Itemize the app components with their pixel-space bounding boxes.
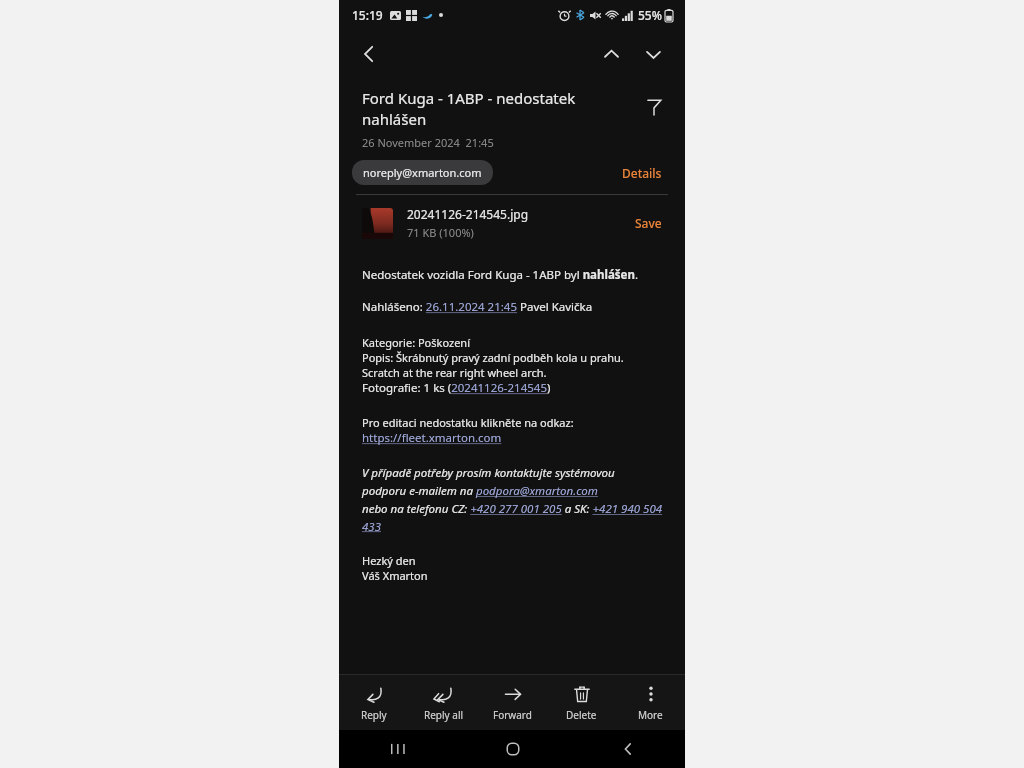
button[interactable]: noreply@xmarton.com: [352, 160, 493, 185]
staticText: V případě potřeby prosím kontaktujte sys…: [362, 465, 666, 534]
staticText: Ford Kuga - 1ABP - nedostatek nahlášen: [362, 88, 576, 130]
staticText: 15:19: [352, 7, 383, 23]
button[interactable]: Forward: [478, 675, 547, 730]
button[interactable]: Next message: [633, 34, 673, 74]
button[interactable]: Recents: [339, 730, 455, 768]
button[interactable]: Back: [349, 34, 389, 74]
staticText: Forward: [493, 708, 532, 722]
staticText: Nedostatek vozidla Ford Kuga - 1ABP byl …: [362, 267, 638, 283]
staticText: Nahlášeno: 26.11.2024 21:45 Pavel Kavičk…: [362, 299, 593, 315]
button[interactable]: Home: [455, 730, 570, 768]
staticText: noreply@xmarton.com: [363, 165, 482, 180]
button[interactable]: Details: [618, 161, 666, 185]
staticText: Save: [635, 215, 662, 231]
button[interactable]: More: [616, 675, 685, 730]
staticText: Details: [622, 165, 662, 181]
staticText: 26 November 2024 21:45: [362, 135, 494, 150]
button[interactable]: Back: [570, 730, 685, 768]
staticText: Hezký den: [362, 553, 416, 568]
staticText: More: [638, 708, 663, 722]
button[interactable]: [362, 208, 393, 239]
staticText: Fotografie: 1 ks (20241126-214545): [362, 380, 551, 396]
staticText: Kategorie: Poškození: [362, 335, 470, 350]
button[interactable]: https://fleet.xmarton.com: [362, 430, 502, 446]
staticText: 55%: [638, 7, 662, 23]
staticText: Reply: [361, 708, 387, 722]
staticText: Scratch at the rear right wheel arch.: [362, 365, 547, 380]
button[interactable]: Reply: [339, 675, 409, 730]
staticText: Popis: Škrábnutý pravý zadní podběh kola…: [362, 350, 624, 365]
staticText: Pro editaci nedostatku klikněte na odkaz…: [362, 415, 574, 430]
staticText: Váš Xmarton: [362, 568, 428, 583]
button[interactable]: Save: [631, 211, 666, 235]
button[interactable]: Flag message: [635, 88, 673, 126]
staticText: Reply all: [424, 708, 464, 722]
staticText: Delete: [566, 708, 597, 722]
button[interactable]: Delete: [547, 675, 616, 730]
staticText: 71 KB (100%): [407, 225, 474, 240]
button[interactable]: Reply all: [409, 675, 478, 730]
staticText: 20241126-214545.jpg: [407, 206, 529, 222]
button[interactable]: Previous message: [591, 34, 631, 74]
